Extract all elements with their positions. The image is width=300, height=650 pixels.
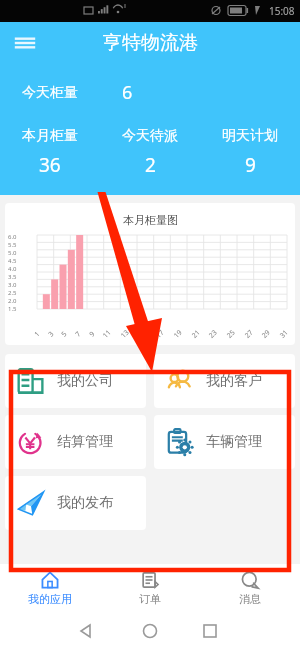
button[interactable]: 车辆管理 [154, 415, 295, 469]
staticText: 13 [119, 327, 132, 341]
staticText: 我的应用 [28, 592, 72, 606]
staticText: 23 [207, 327, 220, 341]
staticText: 结算管理 [57, 433, 113, 451]
staticText: 亨特物流港 [103, 31, 198, 55]
button[interactable]: 消息 [200, 564, 300, 612]
button[interactable]: 订单 [100, 564, 200, 612]
staticText: 19 [172, 327, 185, 341]
button[interactable]: 我的公司 [5, 354, 146, 408]
staticText: 36 [39, 152, 61, 178]
staticText: 今天柜量 [22, 84, 78, 102]
staticText: 29 [260, 327, 273, 341]
staticText: 5.0 [8, 249, 17, 257]
staticText: 27 [243, 327, 256, 341]
staticText: 本月柜量 [22, 127, 78, 145]
button[interactable]: Menu [10, 28, 40, 58]
button[interactable]: 我的客户 [154, 354, 295, 408]
staticText: 31 [278, 327, 291, 341]
staticText: 车辆管理 [206, 433, 262, 451]
staticText: 5 [59, 329, 70, 339]
staticText: 2.0 [8, 297, 17, 305]
staticText: 消息 [239, 592, 261, 606]
staticText: 5.5 [8, 241, 17, 249]
staticText: 明天计划 [222, 127, 278, 145]
staticText: 1.5 [8, 305, 17, 311]
staticText: 本月柜量图 [123, 213, 178, 227]
staticText: 我的客户 [206, 372, 262, 390]
button[interactable]: 我的发布 [5, 476, 146, 530]
staticText: 6 [122, 80, 133, 105]
staticText: 2.5 [8, 289, 17, 297]
staticText: 15:08 [269, 4, 295, 18]
staticText: 我的发布 [57, 494, 113, 512]
staticText: 4.5 [8, 257, 17, 265]
button[interactable]: 我的应用 [0, 564, 100, 612]
staticText: 11 [101, 327, 114, 341]
staticText: 3 [46, 329, 57, 339]
staticText: 1 [32, 329, 43, 339]
staticText: 3.0 [8, 281, 17, 289]
staticText: 3.5 [8, 273, 17, 281]
staticText: 订单 [139, 592, 161, 606]
staticText: 21 [190, 327, 203, 341]
staticText: 9 [245, 152, 256, 178]
staticText: 17 [154, 327, 167, 341]
staticText: 2 [145, 152, 156, 178]
staticText: 6.0 [8, 233, 17, 241]
staticText: 25 [225, 327, 238, 341]
staticText: 9 [87, 329, 98, 339]
staticText: 今天待派 [122, 127, 178, 145]
staticText: 7 [73, 329, 84, 339]
staticText: 我的公司 [57, 372, 113, 390]
button[interactable]: 结算管理 [5, 415, 146, 469]
staticText: 4.0 [8, 265, 17, 273]
